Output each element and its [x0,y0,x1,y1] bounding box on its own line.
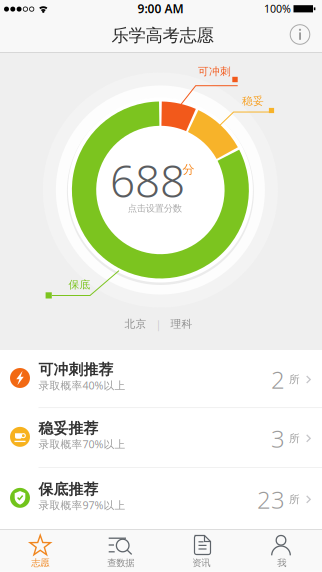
staticText: 北京 [124,317,146,330]
staticText: 2 [271,364,285,395]
button[interactable]: 稳妥推荐 [0,408,322,467]
staticText: 录取概率40%以上 [38,378,125,392]
staticText: 理科 [170,317,192,330]
staticText: 3 [271,422,285,454]
button[interactable]: 北京 [124,317,192,331]
staticText: 可冲刺 [198,65,231,78]
staticText: 688 [110,151,185,210]
staticText: 点击设置分数 [128,203,182,214]
staticText: 乐学高考志愿 [111,25,213,46]
staticText: 查数据 [107,557,134,569]
staticText: 志愿 [31,557,49,569]
button[interactable]: 保底推荐 [0,468,322,529]
staticText: 可冲刺推荐 [38,360,113,378]
button[interactable]: About [289,24,310,45]
staticText: 录取概率70%以上 [38,437,125,451]
button[interactable]: 资讯 [161,530,241,572]
staticText: | [155,317,161,331]
staticText: 资讯 [192,557,210,569]
staticText: 保底 [69,278,91,291]
button[interactable]: 688 [96,125,225,254]
staticText: 100% [264,1,291,16]
button[interactable]: 我 [241,530,322,572]
staticText: 9:00 AM [137,1,183,16]
button[interactable]: 查数据 [80,530,161,572]
button[interactable]: 志愿 [0,530,80,572]
staticText: 所 [289,373,300,386]
staticText: 分 [182,162,194,177]
staticText: 保底推荐 [38,480,98,498]
staticText: 录取概率97%以上 [38,498,125,512]
staticText: 所 [289,493,300,506]
staticText: 稳妥推荐 [38,419,98,437]
staticText: 稳妥 [242,94,264,107]
staticText: 所 [289,432,300,445]
staticText: 23 [257,483,285,515]
button[interactable]: 可冲刺推荐 [0,350,322,407]
staticText: 我 [277,557,286,569]
